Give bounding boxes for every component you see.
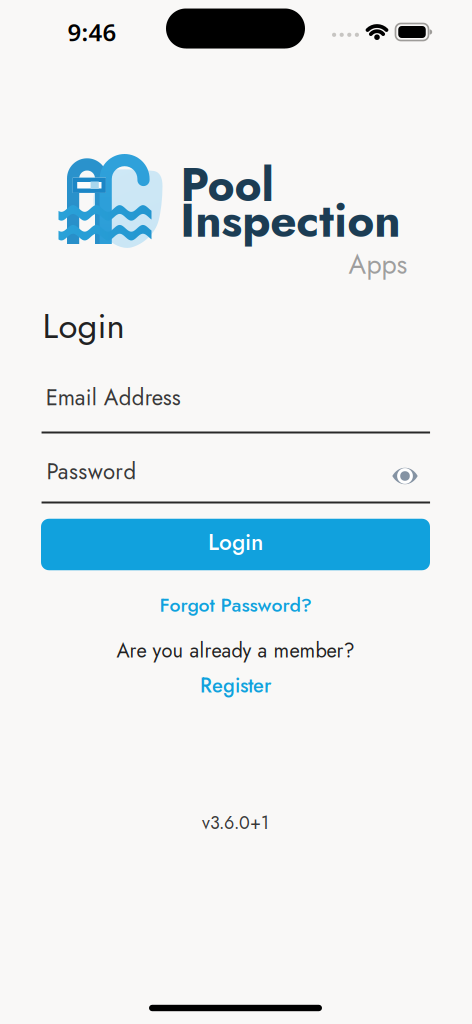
- staticText: Login: [42, 301, 124, 351]
- staticText: Apps: [348, 245, 407, 284]
- button[interactable]: Register: [200, 671, 271, 700]
- staticText: Register: [200, 671, 271, 700]
- staticText: Login: [208, 526, 263, 558]
- staticText: Inspection: [180, 187, 400, 254]
- button[interactable]: Login: [41, 519, 430, 570]
- staticText: Pool: [180, 152, 273, 218]
- staticText: v3.6.0+1: [202, 810, 269, 836]
- staticText: Email Address: [46, 381, 181, 413]
- button[interactable]: Show password: [385, 456, 425, 496]
- staticText: 9:46: [67, 16, 116, 48]
- button[interactable]: Forgot Password?: [159, 591, 311, 619]
- staticText: Forgot Password?: [159, 591, 311, 619]
- staticText: Password: [46, 455, 137, 487]
- staticText: Are you already a member?: [116, 636, 354, 665]
